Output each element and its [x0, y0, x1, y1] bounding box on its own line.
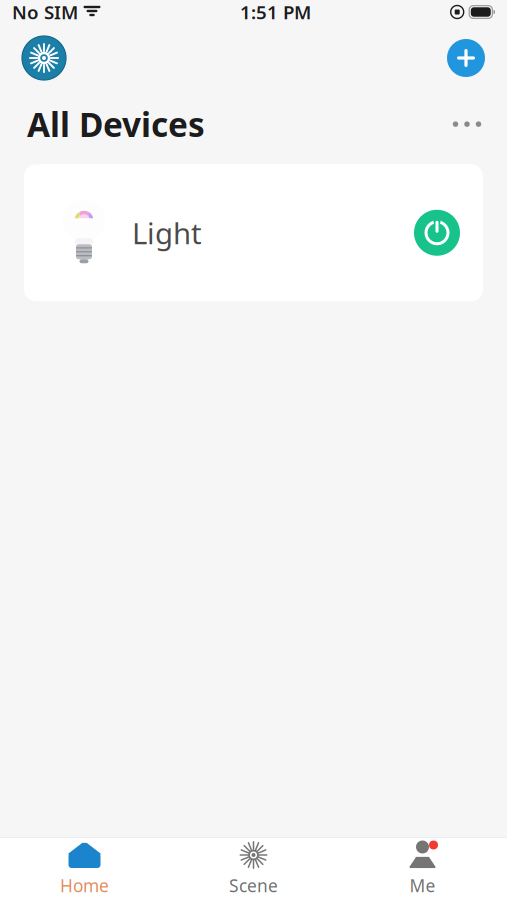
staticText: All Devices — [27, 102, 205, 146]
button[interactable]: Me — [338, 838, 507, 900]
button[interactable]: Home app logo — [22, 36, 66, 80]
staticText: Me — [409, 874, 435, 897]
button[interactable]: More options — [445, 107, 489, 141]
staticText: No SIM — [12, 0, 78, 24]
button[interactable]: Toggle Light power — [414, 210, 460, 256]
staticText: 1:51 PM — [240, 0, 311, 24]
staticText: Light — [132, 213, 202, 252]
staticText: Home — [60, 874, 109, 897]
button[interactable]: Add device — [447, 39, 485, 77]
button[interactable]: Light — [24, 164, 483, 301]
button[interactable]: Scene — [169, 838, 338, 900]
button[interactable]: Home — [0, 838, 169, 900]
staticText: Scene — [229, 874, 278, 897]
